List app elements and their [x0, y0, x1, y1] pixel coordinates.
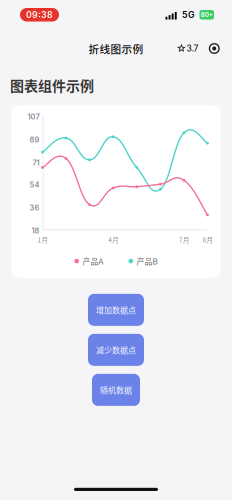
button[interactable]: 减少数据点 — [88, 334, 144, 366]
staticText: 3.7 — [186, 43, 198, 54]
staticText: 71 — [32, 158, 39, 167]
button[interactable]: 随机数据 — [92, 374, 140, 406]
staticText: 5G — [182, 9, 195, 20]
staticText: 107 — [27, 112, 39, 121]
staticText: 减少数据点 — [96, 344, 136, 356]
staticText: 89 — [29, 135, 39, 144]
staticText: 7月 — [179, 235, 189, 244]
staticText: 54 — [29, 180, 39, 189]
staticText: 图表组件示例 — [10, 75, 94, 95]
button[interactable]: Rating 3.7 — [178, 43, 198, 54]
staticText: 折线图示例 — [88, 41, 143, 56]
staticText: 4月 — [108, 235, 118, 244]
staticText: 80+ — [201, 11, 213, 18]
staticText: 随机数据 — [100, 384, 132, 396]
button[interactable]: 增加数据点 — [88, 294, 144, 326]
staticText: 36 — [29, 203, 39, 212]
staticText: 09:38 — [26, 9, 53, 20]
staticText: 增加数据点 — [96, 304, 136, 316]
staticText: 1月 — [37, 235, 47, 244]
staticText: 8月 — [202, 235, 212, 244]
button[interactable]: Close — [198, 44, 219, 53]
staticText: 产品B — [137, 255, 158, 267]
staticText: 18 — [31, 226, 39, 235]
staticText: 产品A — [82, 255, 103, 267]
